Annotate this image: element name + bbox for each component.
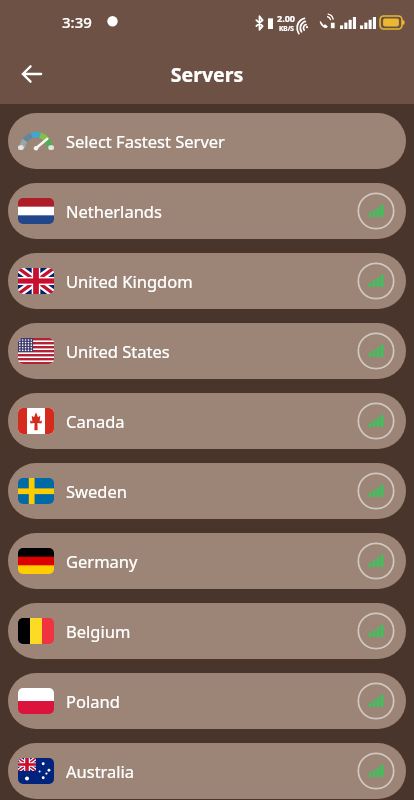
staticText: Servers xyxy=(0,61,414,88)
button[interactable]: Signal strength xyxy=(357,752,395,790)
staticText: 3:39 xyxy=(62,12,92,32)
button[interactable]: Australia xyxy=(8,743,406,799)
button[interactable]: Germany xyxy=(8,533,406,589)
staticText: Germany xyxy=(66,550,357,572)
staticText: United Kingdom xyxy=(66,270,357,292)
button[interactable]: Signal strength xyxy=(357,332,395,370)
staticText: Australia xyxy=(66,760,357,782)
button[interactable]: Canada xyxy=(8,393,406,449)
staticText: Select Fastest Server xyxy=(66,130,395,152)
button[interactable]: Signal strength xyxy=(357,682,395,720)
staticText: Poland xyxy=(66,690,357,712)
button[interactable]: United Kingdom xyxy=(8,253,406,309)
button[interactable]: Signal strength xyxy=(357,402,395,440)
button[interactable]: Signal strength xyxy=(357,262,395,300)
staticText: United States xyxy=(66,340,357,362)
button[interactable]: Netherlands xyxy=(8,183,406,239)
button[interactable]: Select Fastest Server xyxy=(8,113,406,169)
staticText: Netherlands xyxy=(66,200,357,222)
button[interactable]: Back xyxy=(10,52,54,96)
button[interactable]: Sweden xyxy=(8,463,406,519)
button[interactable]: United States xyxy=(8,323,406,379)
button[interactable]: Belgium xyxy=(8,603,406,659)
button[interactable]: Poland xyxy=(8,673,406,729)
staticText: 2.00 xyxy=(277,12,295,24)
button[interactable]: Signal strength xyxy=(357,542,395,580)
button[interactable]: Signal strength xyxy=(357,612,395,650)
button[interactable]: Signal strength xyxy=(357,472,395,510)
staticText: Belgium xyxy=(66,620,357,642)
button[interactable]: Signal strength xyxy=(357,192,395,230)
staticText: Canada xyxy=(66,410,357,432)
staticText: Sweden xyxy=(66,480,357,502)
staticText: KB/S xyxy=(279,24,294,33)
